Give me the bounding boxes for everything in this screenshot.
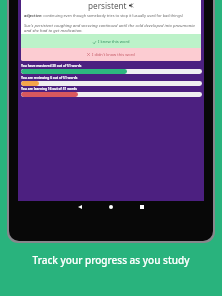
staticText: persistent bbox=[88, 0, 127, 11]
other: Play pronunciation bbox=[129, 3, 134, 8]
staticText: You are reviewing 6 out of 51 words bbox=[21, 76, 78, 80]
button[interactable]: Back bbox=[73, 200, 87, 214]
button[interactable]: persistent bbox=[21, 0, 201, 61]
button[interactable]: Home bbox=[104, 200, 118, 214]
staticText: I didn't know this word bbox=[92, 52, 135, 57]
staticText: You are learning 16 out of 51 words bbox=[21, 87, 77, 91]
staticText: Sue's persistent coughing and sneezing c… bbox=[24, 22, 198, 33]
button[interactable]: I didn't know this word bbox=[21, 48, 201, 61]
staticText: I knew this word bbox=[98, 39, 130, 45]
staticText: You have mastered 30 out of 51 words bbox=[21, 64, 82, 68]
button[interactable]: Recent apps bbox=[135, 200, 149, 214]
staticText: adjective: continuing even though somebo… bbox=[24, 13, 183, 18]
staticText: Track your progress as you study bbox=[0, 253, 222, 267]
button[interactable]: I knew this word bbox=[21, 34, 201, 48]
